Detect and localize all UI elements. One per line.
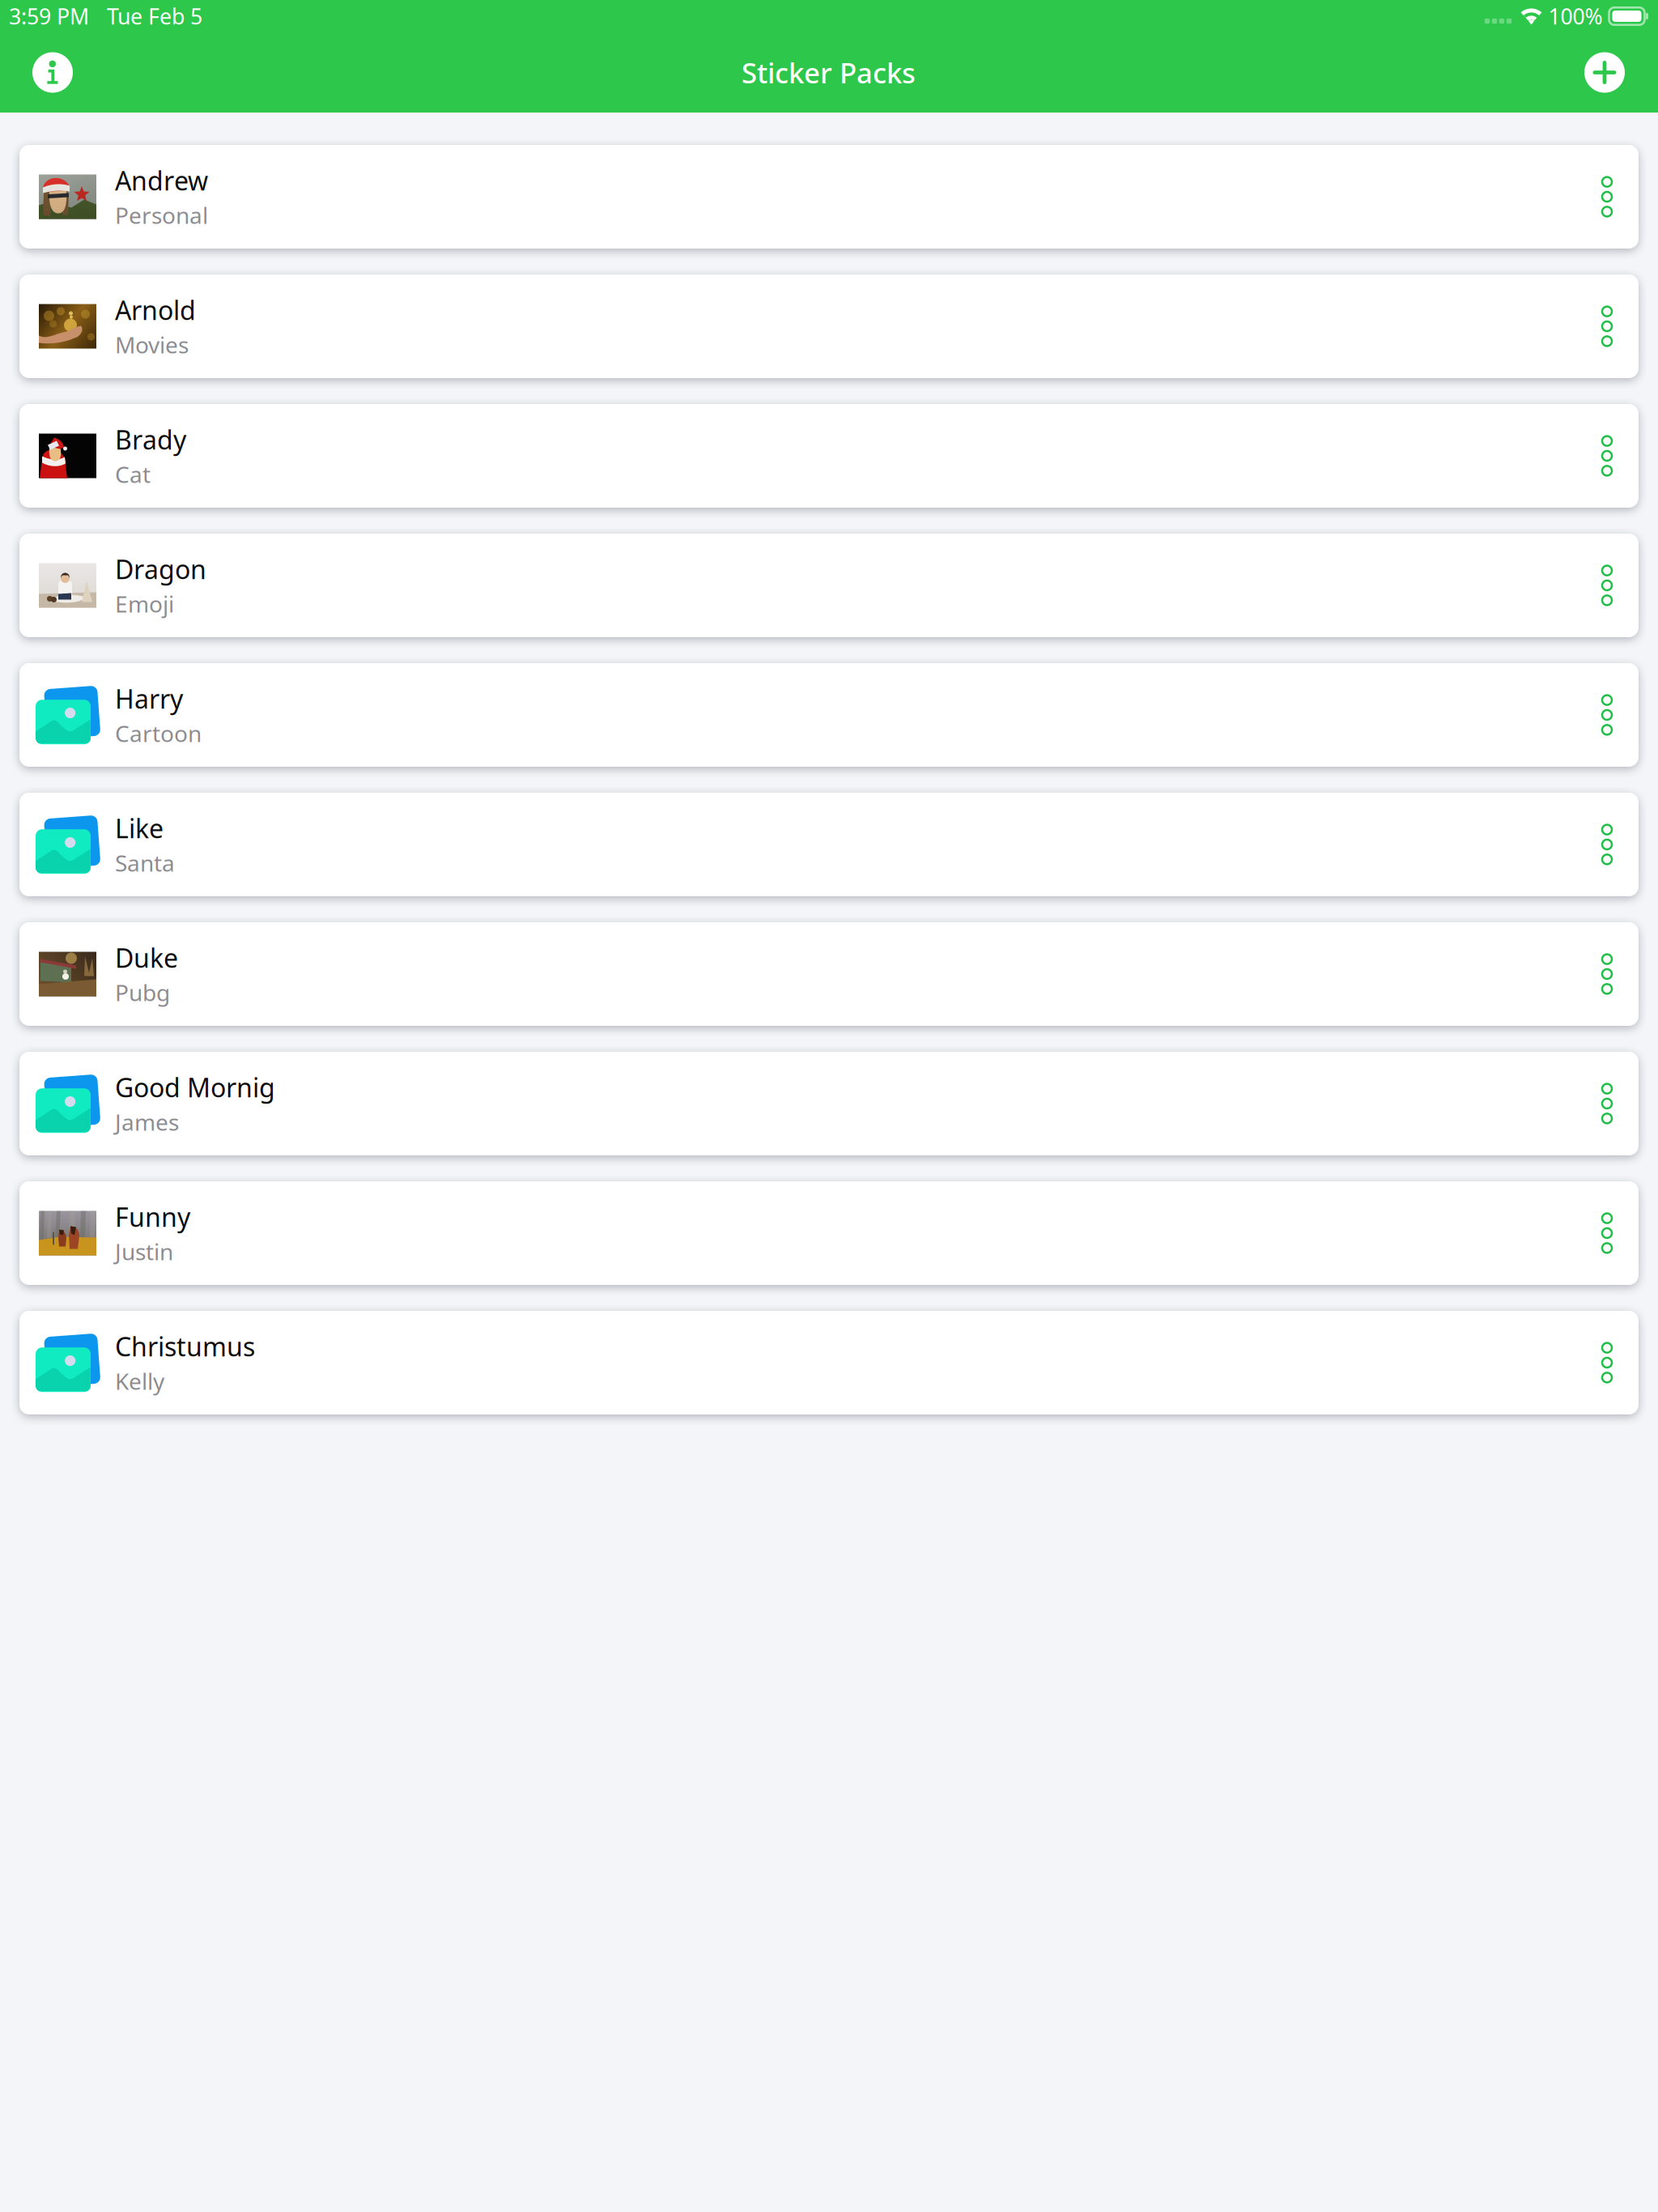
button[interactable]: Harry — [19, 663, 1639, 767]
staticText: Cat — [115, 459, 151, 489]
button[interactable]: Like — [19, 793, 1639, 896]
staticText: Santa — [115, 848, 175, 878]
staticText: Like — [115, 811, 164, 845]
staticText: Tue Feb 5 — [107, 2, 202, 31]
button[interactable]: Funny — [19, 1181, 1639, 1285]
staticText: Cartoon — [115, 718, 202, 748]
staticText: 3:59 PM — [9, 2, 89, 31]
staticText: Pubg — [115, 977, 170, 1008]
button[interactable]: Brady — [19, 404, 1639, 508]
button[interactable]: Info — [19, 32, 87, 113]
staticText: Brady — [115, 422, 186, 457]
staticText: Duke — [115, 941, 178, 975]
staticText: Funny — [115, 1200, 190, 1234]
staticText: Movies — [115, 330, 189, 360]
staticText: 100% — [1548, 2, 1603, 31]
staticText: Dragon — [115, 552, 206, 586]
staticText: Arnold — [115, 293, 196, 327]
button[interactable]: Add sticker pack — [1571, 32, 1639, 113]
staticText: Christumus — [115, 1329, 255, 1364]
staticText: Personal — [115, 200, 208, 230]
staticText: James — [115, 1107, 179, 1137]
staticText: Good Mornig — [115, 1070, 275, 1105]
button[interactable]: Christumus — [19, 1311, 1639, 1414]
button[interactable]: Dragon — [19, 534, 1639, 637]
staticText: Harry — [115, 681, 183, 716]
button[interactable]: Duke — [19, 922, 1639, 1026]
staticText: Andrew — [115, 163, 208, 198]
button[interactable]: Arnold — [19, 274, 1639, 378]
button[interactable]: Andrew — [19, 145, 1639, 249]
staticText: Justin — [115, 1237, 173, 1267]
staticText: Sticker Packs — [742, 54, 916, 91]
staticText: Kelly — [115, 1366, 164, 1396]
button[interactable]: Good Mornig — [19, 1052, 1639, 1155]
staticText: Emoji — [115, 589, 174, 619]
